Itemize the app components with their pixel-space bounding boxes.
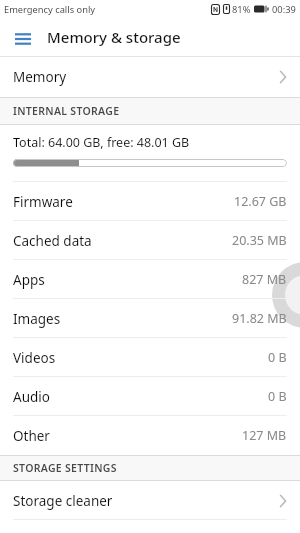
button[interactable]: Firmware [0, 182, 300, 221]
staticText: Memory & storage [47, 27, 181, 47]
staticText: 00:39 [272, 3, 296, 16]
button[interactable] [15, 33, 31, 46]
staticText: 81% [232, 3, 251, 16]
button[interactable]: Memory [0, 57, 300, 97]
staticText: Storage cleaner [13, 492, 113, 510]
staticText: Memory [13, 68, 67, 86]
staticText: INTERNAL STORAGE [13, 104, 120, 118]
button[interactable]: Videos [0, 338, 300, 377]
staticText: Total: 64.00 GB, free: 48.01 GB [13, 134, 190, 151]
staticText: 20.35 MB [232, 232, 287, 249]
staticText: 91.82 MB [232, 310, 287, 327]
staticText: STORAGE SETTINGS [13, 461, 117, 475]
button[interactable]: Cached data [0, 221, 300, 260]
staticText: Images [13, 310, 61, 328]
button[interactable]: Apps [0, 260, 300, 299]
staticText: 0 B [268, 388, 287, 405]
staticText: Emergency calls only [4, 3, 96, 16]
button[interactable]: Storage cleaner [0, 481, 300, 520]
staticText: 827 MB [242, 271, 287, 288]
staticText: Cached data [13, 232, 92, 250]
staticText: 127 MB [242, 427, 287, 444]
button[interactable]: Audio [0, 377, 300, 416]
staticText: Other [13, 427, 50, 445]
button[interactable]: Images [0, 299, 300, 338]
staticText: Audio [13, 388, 50, 406]
staticText: Apps [13, 271, 45, 289]
staticText: 12.67 GB [234, 193, 287, 210]
staticText: Videos [13, 349, 56, 367]
staticText: Firmware [13, 193, 73, 211]
staticText: 0 B [268, 349, 287, 366]
button[interactable]: Other [0, 416, 300, 455]
